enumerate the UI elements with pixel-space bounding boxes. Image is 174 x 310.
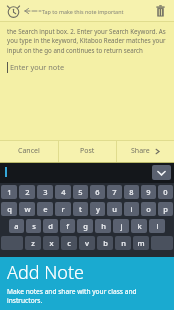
button[interactable]: 5 (73, 185, 88, 199)
staticText: the Search input box. 2. Enter your Sear… (7, 27, 167, 55)
button[interactable]: Post (59, 140, 116, 162)
button[interactable]: d (43, 219, 58, 233)
button[interactable]: v (79, 236, 95, 250)
staticText: Tap to make this note important (42, 8, 124, 15)
staticText: 1 (7, 187, 12, 197)
staticText: c (67, 238, 71, 248)
staticText: j (120, 221, 123, 231)
button[interactable]: 0 (158, 185, 173, 199)
staticText: u (112, 204, 117, 214)
button[interactable]: Share (117, 140, 174, 162)
button[interactable]: i (124, 202, 139, 216)
button[interactable]: g (77, 219, 93, 233)
staticText: h (101, 221, 106, 231)
staticText: 3 (43, 187, 48, 197)
button[interactable]: w (19, 202, 35, 216)
staticText: g (83, 221, 88, 231)
staticText: v (85, 238, 89, 248)
button[interactable]: 3 (37, 185, 53, 199)
staticText: z (31, 238, 35, 248)
button[interactable]: c (61, 236, 77, 250)
staticText: Make notes and share with your class and… (7, 287, 167, 305)
button[interactable]: z (25, 236, 41, 250)
button[interactable]: Cancel (0, 140, 58, 162)
button[interactable]: Delete note (151, 2, 169, 20)
button[interactable]: n (115, 236, 131, 250)
button[interactable]: t (73, 202, 88, 216)
staticText: 2 (25, 187, 30, 197)
staticText: 9 (146, 187, 151, 197)
staticText: q (7, 204, 12, 214)
button[interactable]: q (1, 202, 17, 216)
staticText: n (121, 238, 126, 248)
button[interactable]: Shift (1, 236, 23, 250)
staticText: s (32, 221, 36, 231)
staticText: m (137, 238, 145, 248)
button[interactable]: x (43, 236, 59, 250)
staticText: o (146, 204, 151, 214)
button[interactable]: 4 (55, 185, 71, 199)
staticText: k (137, 221, 142, 231)
staticText: 5 (78, 187, 83, 197)
staticText: y (96, 204, 100, 214)
staticText: Add Note (7, 260, 84, 285)
staticText: b (103, 238, 108, 248)
button[interactable]: k (131, 219, 147, 233)
button[interactable]: y (90, 202, 105, 216)
staticText: r (61, 204, 65, 214)
button[interactable]: u (107, 202, 122, 216)
staticText: 6 (95, 187, 100, 197)
staticText: 7 (112, 187, 117, 197)
button[interactable]: o (141, 202, 156, 216)
button[interactable]: r (55, 202, 71, 216)
staticText: x (49, 238, 54, 248)
button[interactable]: m (133, 236, 149, 250)
button[interactable]: Shift (151, 236, 173, 250)
staticText: Post (80, 146, 95, 156)
staticText: i (130, 204, 133, 214)
button[interactable]: a (9, 219, 24, 233)
staticText: f (66, 221, 69, 231)
button[interactable]: f (60, 219, 75, 233)
button[interactable]: 7 (107, 185, 122, 199)
button[interactable]: l (149, 219, 165, 233)
staticText: a (14, 221, 19, 231)
staticText: e (43, 204, 48, 214)
staticText: Share (131, 146, 150, 156)
button[interactable]: 8 (124, 185, 139, 199)
staticText: t (79, 204, 82, 214)
button[interactable]: Hide keyboard (152, 165, 171, 180)
button[interactable]: Set reminder (4, 2, 22, 20)
button[interactable]: 6 (90, 185, 105, 199)
button[interactable]: h (95, 219, 111, 233)
staticText: l (156, 221, 159, 231)
staticText: Cancel (18, 146, 40, 156)
button[interactable]: 9 (141, 185, 156, 199)
button[interactable]: s (26, 219, 41, 233)
button[interactable]: e (37, 202, 53, 216)
staticText: 4 (61, 187, 66, 197)
staticText: w (24, 204, 31, 214)
staticText: p (163, 204, 168, 214)
staticText: 8 (129, 187, 134, 197)
button[interactable]: b (97, 236, 113, 250)
staticText: Enter your note (10, 62, 65, 72)
button[interactable]: p (158, 202, 173, 216)
staticText: 0 (163, 187, 168, 197)
button[interactable]: 2 (19, 185, 35, 199)
button[interactable]: 1 (1, 185, 17, 199)
button[interactable]: j (113, 219, 129, 233)
staticText: d (48, 221, 53, 231)
